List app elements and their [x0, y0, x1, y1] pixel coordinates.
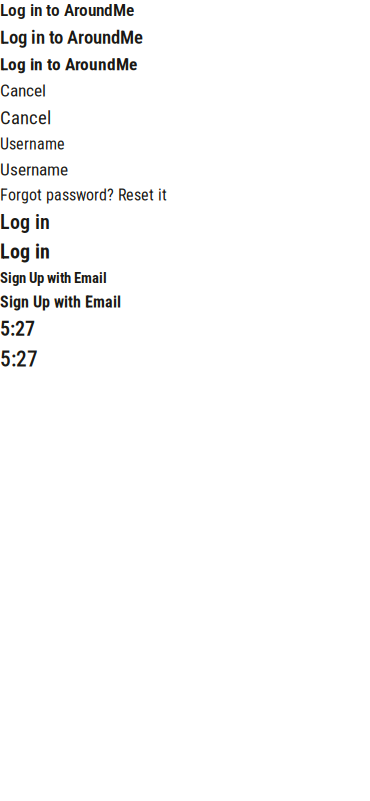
- staticText: Log in to AroundMe: [0, 0, 134, 20]
- staticText: Log in to AroundMe: [0, 26, 143, 48]
- staticText: Sign Up with Email: [0, 293, 121, 311]
- staticText: 5:27: [0, 317, 35, 341]
- staticText: Username: [0, 159, 68, 180]
- staticText: Cancel: [0, 80, 46, 101]
- staticText: Sign Up with Email: [0, 269, 107, 287]
- staticText: Username: [0, 135, 65, 153]
- staticText: Log in: [0, 240, 50, 263]
- staticText: Forgot password? Reset it: [0, 186, 167, 204]
- staticText: Cancel: [0, 107, 51, 129]
- staticText: Log in to AroundMe: [0, 54, 137, 74]
- staticText: 5:27: [0, 347, 38, 372]
- staticText: Log in: [0, 210, 50, 234]
